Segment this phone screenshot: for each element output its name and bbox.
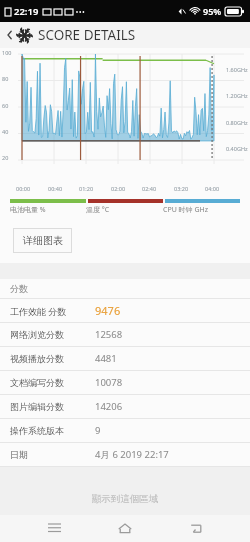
staticText: 0.80GHz [226,119,248,126]
staticText: 10078 [95,376,123,389]
button[interactable]: 图片编辑分数 [0,395,250,418]
button[interactable]: 工作效能 分数 [0,299,250,322]
staticText: 0.40GHz [226,145,248,152]
staticText: 日期 [10,449,95,460]
staticText: 02:00 [111,185,126,192]
staticText: 详细图表 [23,234,63,247]
staticText: CPU 时钟 GHz [163,205,240,215]
staticText: 1.60GHz [226,66,248,73]
button[interactable]: 详细图表 [13,228,72,253]
staticText: 视频播放分数 [10,353,95,364]
staticText: 顯示到這個區域 [0,493,250,505]
staticText: 网络浏览分数 [10,329,95,340]
staticText: 00:00 [16,185,31,192]
staticText: 1.20GHz [226,92,248,99]
button[interactable]: Back [179,515,213,542]
button[interactable]: Recent apps [37,515,71,542]
staticText: 00:40 [48,185,63,192]
staticText: 电池电量 % [10,205,86,215]
staticText: 9 [95,424,101,437]
button[interactable]: Home [108,515,142,542]
staticText: 分数 [10,283,28,294]
staticText: 22:19 [14,5,39,18]
staticText: 03:20 [174,185,189,192]
button[interactable]: 操作系统版本 [0,419,250,442]
staticText: 02:40 [142,185,157,192]
staticText: 图片编辑分数 [10,401,95,412]
staticText: 12568 [95,328,123,341]
button[interactable]: 文档编写分数 [0,371,250,394]
staticText: 100 [2,49,12,56]
staticText: 4月 6 2019 22:17 [95,448,169,461]
staticText: 60 [2,102,9,109]
staticText: 温度 °C [86,205,163,215]
staticText: 4481 [95,352,117,365]
staticText: 9476 [95,303,121,318]
staticText: 80 [2,75,9,82]
staticText: 20 [2,154,9,161]
staticText: SCORE DETAILS [38,26,136,44]
staticText: 操作系统版本 [10,425,95,436]
staticText: 文档编写分数 [10,377,95,388]
button[interactable]: 日期 [0,443,250,466]
staticText: 40 [2,128,9,135]
staticText: 工作效能 分数 [10,305,95,317]
button[interactable]: Back [3,28,17,42]
staticText: 95% [203,5,222,17]
staticText: 04:00 [205,185,220,192]
staticText: 14206 [95,400,123,413]
staticText: 01:20 [79,185,94,192]
button[interactable]: 网络浏览分数 [0,323,250,346]
button[interactable]: 视频播放分数 [0,347,250,370]
